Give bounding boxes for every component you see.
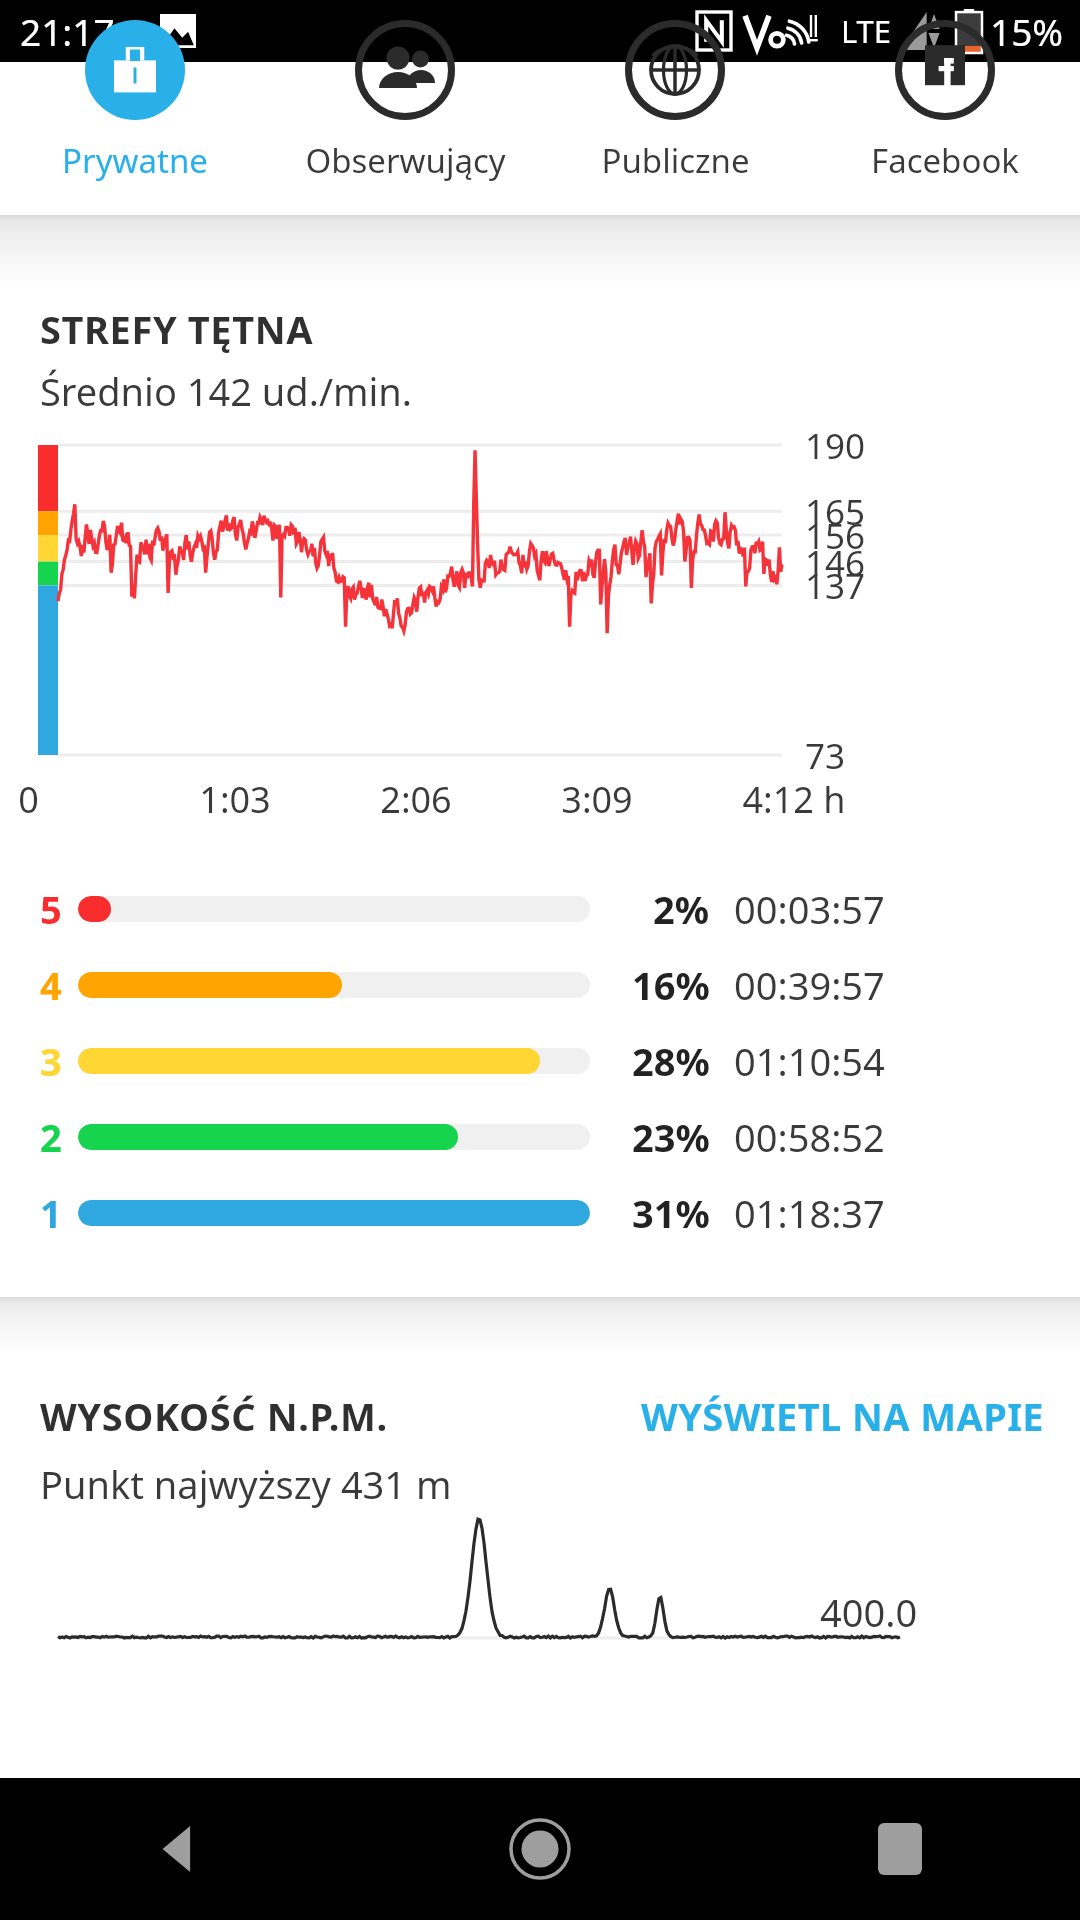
button[interactable]: Recent apps [720,1778,1080,1920]
staticText: 16% [632,959,710,1011]
staticText: 1 [40,1187,62,1239]
staticText: 3 [40,1035,62,1087]
staticText: 3:09 [561,775,633,824]
staticText: 4:12 h [742,775,846,824]
button[interactable]: 4 [0,957,1080,1013]
staticText: 190 [805,422,1080,470]
button[interactable]: WYŚWIETL NA MAPIE [605,1384,1080,1448]
staticText: 400.0 [820,1586,918,1638]
button[interactable]: Facebook [810,62,1080,215]
staticText: 21:17 [20,6,115,56]
staticText: 146 [805,539,1080,587]
staticText: 5 [40,883,62,935]
staticText: 73 [805,732,1080,780]
staticText: Średnio 142 ud./min. [40,365,413,417]
staticText: 1:03 [199,775,271,824]
staticText: 156 [805,512,1080,560]
button[interactable]: Obserwujący [270,62,540,215]
staticText: 2 [40,1111,62,1163]
button[interactable]: 5 [0,881,1080,937]
staticText: Prywatne [62,138,208,183]
button[interactable]: 3 [0,1033,1080,1089]
staticText: 00:39:57 [734,959,885,1011]
staticText: 01:18:37 [734,1187,885,1239]
staticText: Facebook [871,138,1019,183]
button[interactable]: Home [360,1778,720,1920]
staticText: 00:03:57 [734,883,885,935]
button[interactable]: Publiczne [540,62,810,215]
staticText: WYSOKOŚĆ N.P.M. [40,1390,388,1442]
staticText: Obserwujący [305,138,506,183]
staticText: 2:06 [380,775,452,824]
staticText: 137 [805,562,1080,610]
staticText: 165 [805,488,1080,536]
button[interactable]: Back [0,1778,360,1920]
staticText: Punkt najwyższy 431 m [40,1458,452,1510]
button[interactable]: Prywatne [0,62,270,215]
staticText: 00:58:52 [734,1111,885,1163]
staticText: 2% [653,883,710,935]
button[interactable]: 1 [0,1185,1080,1241]
staticText: 01:10:54 [734,1035,885,1087]
staticText: Publiczne [601,138,750,183]
staticText: 23% [632,1111,710,1163]
staticText: 28% [632,1035,710,1087]
staticText: LTE [841,10,892,52]
button[interactable]: 2 [0,1109,1080,1165]
staticText: 0 [18,775,39,824]
staticText: 31% [632,1187,710,1239]
staticText: 15% [990,6,1064,56]
staticText: WYŚWIETL NA MAPIE [641,1390,1044,1442]
staticText: STREFY TĘTNA [40,303,314,355]
staticText: 4 [40,959,62,1011]
